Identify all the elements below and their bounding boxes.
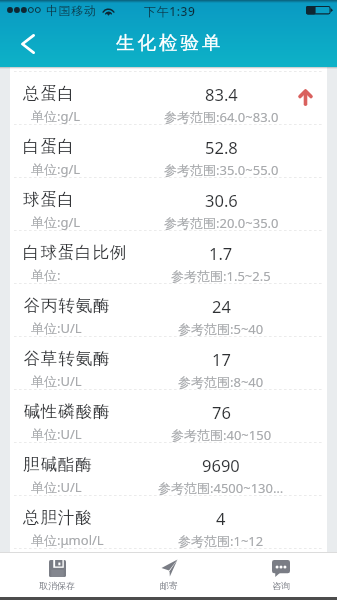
button[interactable]: 胆碱酯酶: [10, 442, 327, 495]
button[interactable]: 总蛋白: [10, 71, 327, 124]
staticText: 白球蛋白比例: [23, 242, 128, 263]
button[interactable]: 咨询: [225, 553, 337, 597]
staticText: 单位:g/L: [31, 107, 81, 124]
staticText: 单位:g/L: [31, 213, 81, 230]
button[interactable]: 碱性磷酸酶: [10, 389, 327, 442]
staticText: 4: [216, 507, 226, 529]
staticText: 总蛋白: [23, 83, 76, 104]
staticText: 下午1:39: [144, 3, 196, 19]
staticText: 参考范围:1.5~2.5: [171, 267, 271, 283]
staticText: 谷草转氨酶: [23, 348, 110, 369]
staticText: 碱性磷酸酶: [23, 401, 110, 422]
button[interactable]: 谷丙转氨酶: [10, 283, 327, 336]
staticText: 参考范围:64.0~83.0: [164, 108, 279, 124]
staticText: 生化检验单: [116, 31, 224, 54]
staticText: 17: [212, 348, 231, 370]
staticText: 9690: [202, 454, 240, 476]
button[interactable]: Back: [0, 20, 56, 67]
staticText: 胆碱酯酶: [23, 454, 93, 475]
button[interactable]: 谷草转氨酶: [10, 336, 327, 389]
button[interactable]: 球蛋白: [10, 177, 327, 230]
staticText: 邮寄: [160, 580, 178, 591]
button[interactable]: 总胆汁酸: [10, 495, 327, 548]
staticText: 单位:U/L: [31, 319, 82, 336]
staticText: 52.8: [205, 136, 238, 158]
staticText: 咨询: [272, 580, 290, 591]
staticText: 取消保存: [39, 580, 75, 591]
staticText: 参考范围:35.0~55.0: [164, 161, 279, 177]
staticText: 单位:g/L: [31, 160, 81, 177]
staticText: 参考范围:20.0~35.0: [164, 214, 279, 230]
staticText: 总胆汁酸: [23, 507, 93, 528]
staticText: 参考范围:1~12: [178, 532, 264, 548]
staticText: 83.4: [205, 83, 238, 105]
staticText: 白蛋白: [23, 136, 76, 157]
staticText: 参考范围:8~40: [178, 373, 264, 389]
staticText: 中国移动: [46, 3, 97, 18]
staticText: 谷丙转氨酶: [23, 295, 110, 316]
staticText: 24: [212, 295, 231, 317]
staticText: 参考范围:5~40: [178, 320, 264, 336]
staticText: 1.7: [209, 242, 233, 264]
staticText: 单位:U/L: [31, 372, 82, 389]
staticText: 76: [212, 401, 231, 423]
staticText: 单位:μmol/L: [31, 531, 104, 548]
button[interactable]: 取消保存: [0, 553, 113, 597]
staticText: 单位:U/L: [31, 425, 82, 442]
button[interactable]: 邮寄: [113, 553, 225, 597]
staticText: 30.6: [205, 189, 238, 211]
button[interactable]: 白蛋白: [10, 124, 327, 177]
button[interactable]: 白球蛋白比例: [10, 230, 327, 283]
staticText: 球蛋白: [23, 189, 76, 210]
staticText: 参考范围:4500~13000: [158, 479, 284, 495]
staticText: 单位:: [31, 266, 61, 283]
staticText: 单位:U/L: [31, 478, 82, 495]
staticText: 参考范围:40~150: [171, 426, 272, 442]
